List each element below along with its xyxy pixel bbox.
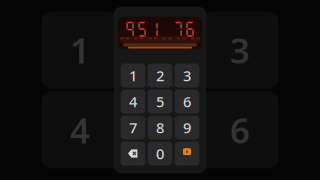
staticText: 6 — [230, 107, 250, 153]
staticText: 951 76 — [124, 19, 196, 38]
staticText: 3 — [183, 66, 191, 85]
button[interactable]: 2 — [147, 63, 172, 87]
button[interactable]: 1 — [120, 63, 145, 87]
button[interactable]: 9 — [174, 115, 199, 139]
button[interactable]: 7 — [120, 115, 145, 139]
staticText: 5 — [156, 92, 164, 111]
staticText: 3 — [230, 27, 250, 73]
staticText: 2 — [156, 66, 164, 85]
button[interactable]: 8 — [147, 115, 172, 139]
staticText: 6 — [183, 92, 191, 111]
button[interactable]: 5 — [147, 89, 172, 113]
button[interactable]: 3 — [174, 63, 199, 87]
button[interactable]: 0 — [147, 141, 172, 165]
staticText: 1 — [70, 27, 90, 73]
staticText: 0 — [156, 144, 164, 163]
staticText: 1 — [129, 66, 137, 85]
staticText: 7 — [129, 118, 137, 137]
button[interactable]: Lock — [174, 141, 199, 165]
staticText: 9 — [183, 118, 191, 137]
staticText: 8 — [156, 118, 164, 137]
button[interactable]: Delete — [120, 141, 145, 165]
staticText: 4 — [70, 107, 90, 153]
staticText: 4 — [129, 92, 137, 111]
button[interactable]: 6 — [174, 89, 199, 113]
button[interactable]: 4 — [120, 89, 145, 113]
